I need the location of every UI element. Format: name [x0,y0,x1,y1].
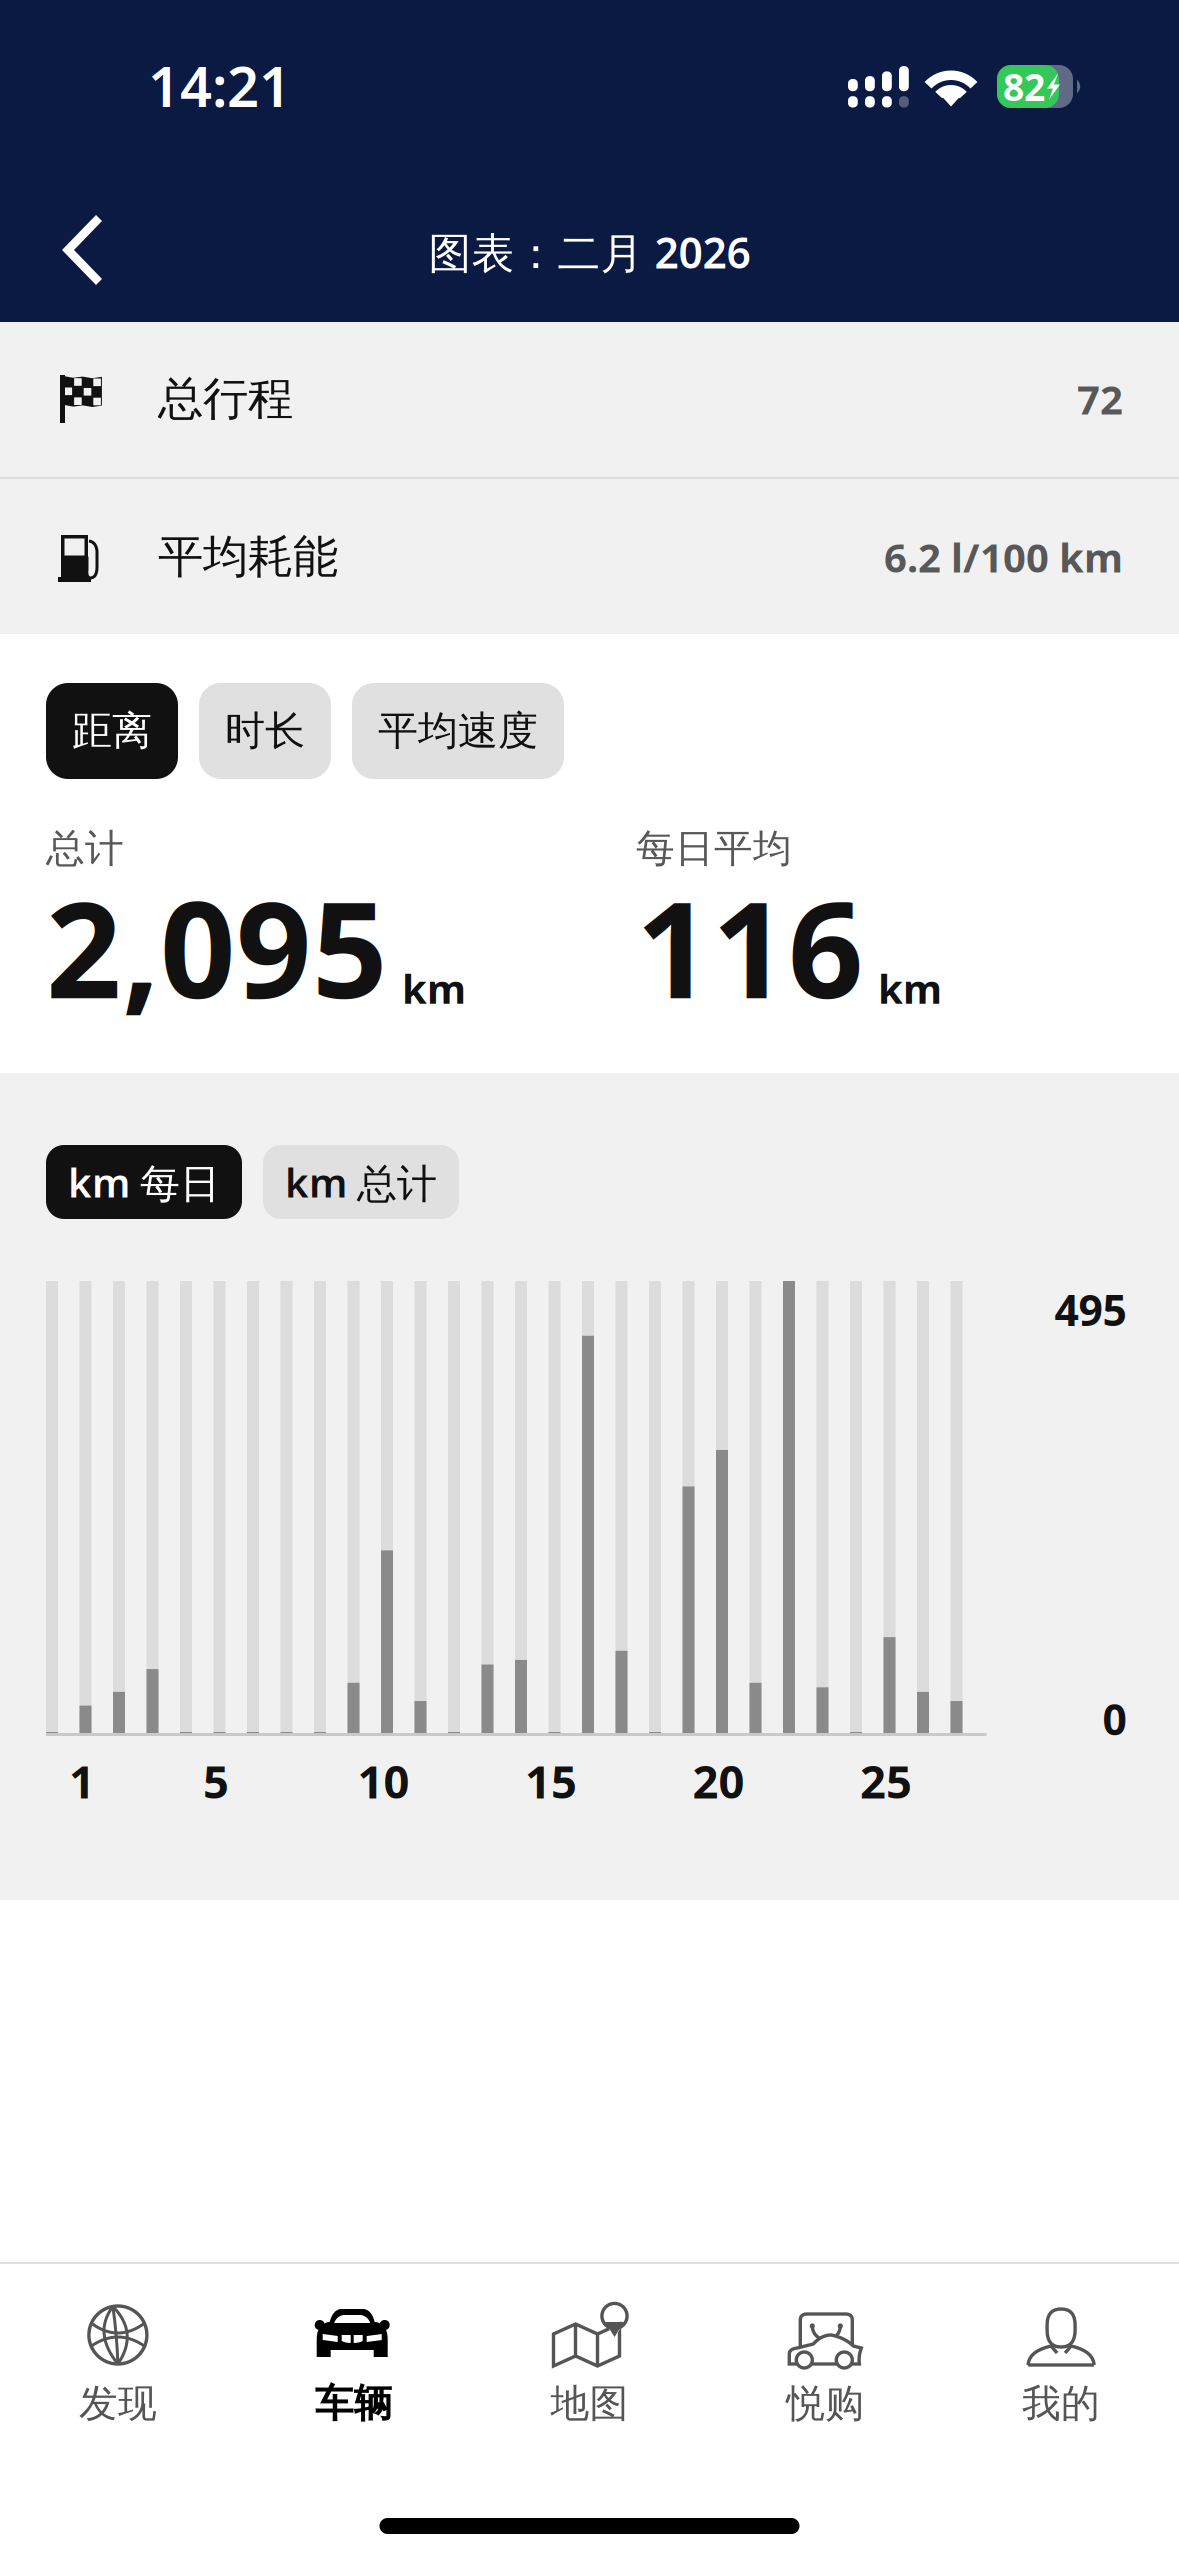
staticText: 我的 [1022,2380,1100,2427]
staticText: 5 [203,1751,229,1811]
staticText: 地图 [550,2380,628,2427]
button[interactable]: km 总计 [263,1145,459,1219]
staticText: 10 [357,1751,409,1811]
button[interactable]: 地图 [472,2264,707,2436]
staticText: 每日平均 [636,825,792,872]
button[interactable]: 距离 [46,683,178,779]
button[interactable]: 时长 [199,683,331,779]
staticText: 14:21 [148,48,291,122]
button[interactable]: 发现 [0,2264,236,2436]
staticText: 72 [1077,372,1123,425]
staticText: 6.2 l/100 km [884,530,1123,583]
button[interactable]: 车辆 [236,2264,472,2436]
staticText: 时长 [225,706,305,755]
button[interactable]: 我的 [943,2264,1179,2436]
staticText: 20 [692,1751,744,1811]
staticText: 25 [860,1751,912,1811]
staticText: km 总计 [285,1155,437,1209]
staticText: 图表：二月 2026 [428,224,750,280]
button[interactable]: 悦购 [707,2264,943,2436]
staticText: 总计 [46,825,124,872]
button[interactable]: 平均耗能 [0,479,1179,635]
button[interactable]: km 每日 [46,1145,242,1219]
staticText: 15 [525,1751,577,1811]
staticText: 距离 [72,706,152,755]
staticText: km 每日 [68,1155,220,1209]
staticText: 总行程 [158,371,293,427]
button[interactable]: 总行程 [0,321,1179,477]
button[interactable]: Back [42,191,140,313]
staticText: 平均速度 [378,706,538,755]
staticText: 2,095 [46,859,388,1035]
staticText: 116 [636,859,864,1035]
staticText: 平均耗能 [158,529,338,585]
staticText: 82 [1003,62,1045,111]
staticText: km [402,962,466,1015]
staticText: 悦购 [786,2380,864,2427]
staticText: 1 [69,1751,95,1811]
staticText: 0 [1102,1690,1126,1747]
staticText: 495 [1054,1281,1126,1338]
staticText: 车辆 [315,2380,393,2427]
staticText: 发现 [79,2380,157,2427]
button[interactable]: 平均速度 [352,683,564,779]
staticText: km [878,962,942,1015]
